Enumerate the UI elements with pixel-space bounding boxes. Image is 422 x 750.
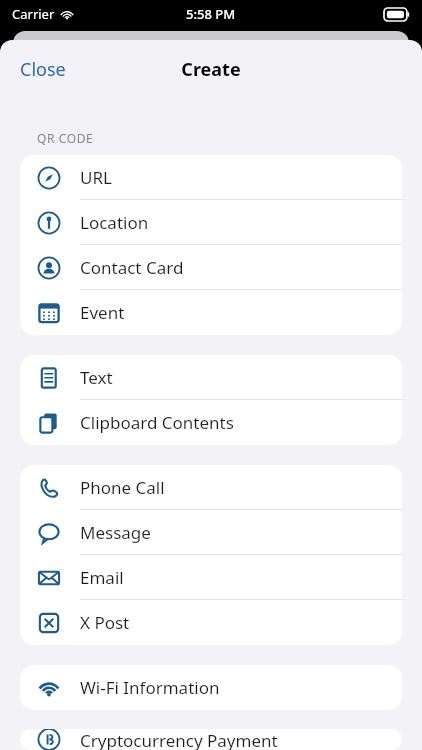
staticText: Wi-Fi Information	[80, 676, 220, 699]
staticText: Phone Call	[80, 476, 165, 499]
staticText: Email	[80, 566, 124, 589]
button[interactable]: Cryptocurrency Payment	[20, 729, 402, 750]
button[interactable]: Phone Call	[20, 465, 402, 510]
staticText: Contact Card	[80, 256, 184, 279]
button[interactable]: Close	[8, 51, 78, 88]
button[interactable]: Event	[20, 290, 402, 335]
staticText: QR CODE	[37, 130, 94, 146]
staticText: Location	[80, 211, 149, 234]
staticText: Close	[20, 57, 66, 82]
button[interactable]: Clipboard Contents	[20, 400, 402, 445]
button[interactable]: URL	[20, 155, 402, 200]
staticText: Event	[80, 301, 125, 324]
staticText: Text	[80, 366, 113, 389]
staticText: 5:58 PM	[186, 5, 236, 23]
staticText: Create	[181, 57, 241, 82]
button[interactable]: Text	[20, 355, 402, 400]
button[interactable]: Location	[20, 200, 402, 245]
button[interactable]: Contact Card	[20, 245, 402, 290]
button[interactable]: Wi-Fi Information	[20, 665, 402, 710]
button[interactable]: Email	[20, 555, 402, 600]
staticText: X Post	[80, 611, 130, 634]
staticText: Cryptocurrency Payment	[80, 729, 278, 750]
staticText: Clipboard Contents	[80, 411, 234, 434]
staticText: Message	[80, 521, 151, 544]
staticText: URL	[80, 166, 112, 189]
button[interactable]: X Post	[20, 600, 402, 645]
staticText: Carrier	[12, 5, 55, 23]
button[interactable]: Message	[20, 510, 402, 555]
